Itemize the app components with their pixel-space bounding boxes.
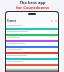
button[interactable]	[6, 42, 58, 48]
button[interactable]	[6, 54, 58, 60]
button[interactable]	[6, 48, 58, 54]
staticText: The best app	[19, 0, 46, 5]
staticText: for Countdowns	[16, 5, 49, 10]
button[interactable]	[6, 36, 58, 42]
staticText: Timers	[7, 19, 17, 23]
button[interactable]	[6, 30, 58, 36]
button[interactable]	[6, 24, 58, 30]
button[interactable]	[6, 60, 58, 66]
